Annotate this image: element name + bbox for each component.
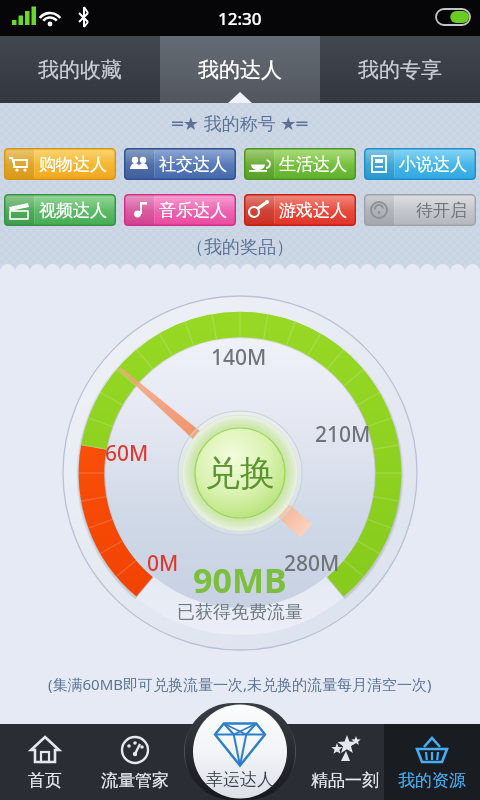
button[interactable]: 待开启 [364, 194, 476, 226]
staticText: 我的资源 [398, 770, 466, 791]
button[interactable]: 游戏达人 [244, 194, 356, 226]
staticText: 140M [211, 343, 267, 369]
button[interactable]: 音乐达人 [124, 194, 236, 226]
staticText: 0M [147, 549, 179, 575]
staticText: 我的收藏 [38, 57, 122, 83]
staticText: 首页 [28, 770, 62, 791]
staticText: 我的达人 [198, 57, 282, 83]
button[interactable]: 购物达人 [4, 148, 116, 180]
staticText: 210M [315, 420, 371, 446]
staticText: ═★ 我的称号 ★═ [172, 111, 308, 135]
staticText: 已获得免费流量 [177, 601, 303, 624]
staticText: （我的奖品） [186, 236, 294, 259]
button[interactable]: 首页 [0, 724, 90, 800]
staticText: 90MB [193, 557, 287, 603]
button[interactable]: 我的收藏 [0, 36, 160, 103]
staticText: 社交达人 [159, 154, 227, 175]
staticText: 精品一刻 [311, 770, 379, 791]
staticText: 兑换 [205, 451, 275, 495]
button[interactable]: 我的资源 [384, 724, 480, 800]
button[interactable]: 我的专享 [320, 36, 480, 103]
staticText: 我的专享 [358, 57, 442, 83]
button[interactable]: 我的达人 [160, 36, 320, 103]
button[interactable]: 社交达人 [124, 148, 236, 180]
staticText: 12:30 [218, 7, 262, 30]
button[interactable]: 幸运达人 [184, 703, 296, 800]
staticText: 幸运达人 [206, 769, 274, 790]
staticText: 流量管家 [101, 770, 169, 791]
staticText: 生活达人 [279, 154, 347, 175]
staticText: 游戏达人 [279, 200, 347, 221]
button[interactable]: 小说达人 [364, 148, 476, 180]
staticText: (集满60MB即可兑换流量一次,未兑换的流量每月清空一次) [48, 674, 432, 694]
staticText: 60M [105, 439, 149, 465]
button[interactable]: 兑换 [178, 411, 302, 535]
staticText: 280M [284, 549, 340, 575]
staticText: 待开启 [416, 200, 467, 221]
button[interactable]: 生活达人 [244, 148, 356, 180]
staticText: 小说达人 [399, 154, 467, 175]
staticText: 购物达人 [39, 154, 107, 175]
button[interactable]: 流量管家 [90, 724, 180, 800]
staticText: 视频达人 [39, 200, 107, 221]
button[interactable]: 精品一刻 [299, 724, 391, 800]
staticText: 音乐达人 [159, 200, 227, 221]
button[interactable]: 视频达人 [4, 194, 116, 226]
